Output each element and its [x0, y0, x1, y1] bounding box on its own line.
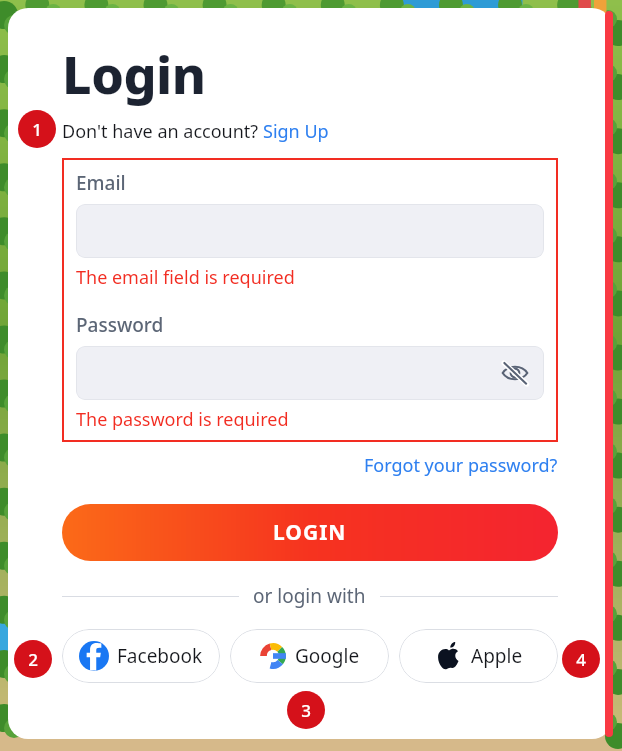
button[interactable]: Google [230, 629, 389, 683]
staticText: Google [295, 643, 360, 669]
button[interactable]: LOGIN [62, 504, 558, 561]
staticText: The email field is required [76, 265, 295, 290]
staticText: Forgot your password? [364, 453, 558, 478]
staticText: Email [76, 170, 126, 196]
staticText: Sign Up [263, 119, 329, 144]
staticText: Password [76, 312, 164, 338]
staticText: or login with [253, 583, 366, 609]
staticText: Don't have an account? [62, 119, 263, 144]
staticText: 4 [576, 648, 586, 671]
button[interactable]: Forgot your password? [364, 453, 558, 478]
staticText: 3 [301, 699, 311, 722]
staticText: 2 [28, 648, 38, 671]
button[interactable]: Apple [399, 629, 558, 683]
staticText: 1 [32, 118, 42, 141]
staticText: Apple [471, 643, 523, 669]
staticText: Login [62, 38, 206, 109]
button[interactable]: Sign Up [263, 119, 329, 144]
button[interactable]: Show password [496, 354, 534, 392]
button[interactable]: Facebook [62, 629, 220, 683]
staticText: Facebook [117, 643, 203, 669]
staticText: The password is required [76, 407, 289, 432]
button[interactable]: Show password [76, 346, 544, 400]
staticText: LOGIN [273, 518, 347, 547]
